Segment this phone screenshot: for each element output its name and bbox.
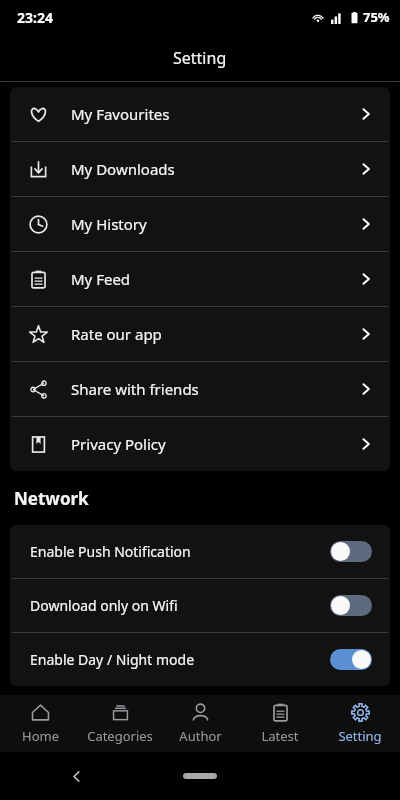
staticText: Latest bbox=[261, 727, 299, 745]
button[interactable]: Download only on Wifi bbox=[10, 579, 390, 632]
staticText: My History bbox=[71, 214, 358, 234]
button[interactable]: Privacy Policy bbox=[10, 417, 390, 471]
staticText: Privacy Policy bbox=[71, 434, 358, 454]
button[interactable]: Setting bbox=[320, 695, 400, 752]
staticText: My Feed bbox=[71, 269, 358, 289]
button[interactable]: Rate our app bbox=[10, 307, 390, 361]
staticText: My Downloads bbox=[71, 159, 358, 179]
other: Enable Day / Night mode bbox=[330, 649, 372, 670]
button[interactable]: Home bbox=[0, 695, 80, 752]
other: Home bbox=[183, 773, 217, 779]
staticText: Network bbox=[14, 487, 89, 510]
button[interactable]: Categories bbox=[80, 695, 160, 752]
button[interactable]: My Feed bbox=[10, 252, 390, 306]
other: Enable Push Notification bbox=[330, 541, 372, 562]
staticText: Categories bbox=[87, 727, 153, 745]
other: Download only on Wifi bbox=[330, 595, 372, 616]
staticText: Setting bbox=[173, 47, 227, 69]
button[interactable]: My Downloads bbox=[10, 142, 390, 196]
staticText: 23:24 bbox=[17, 8, 53, 27]
staticText: 75% bbox=[363, 8, 390, 26]
staticText: Author bbox=[179, 727, 222, 745]
button[interactable]: Enable Push Notification bbox=[10, 525, 390, 578]
button[interactable]: My Favourites bbox=[10, 87, 390, 141]
button[interactable]: Share with friends bbox=[10, 362, 390, 416]
staticText: Enable Day / Night mode bbox=[30, 650, 330, 669]
other: Back bbox=[70, 770, 83, 783]
staticText: My Favourites bbox=[71, 104, 358, 124]
button[interactable]: Author bbox=[160, 695, 240, 752]
staticText: Rate our app bbox=[71, 324, 358, 344]
button[interactable]: Enable Day / Night mode bbox=[10, 633, 390, 686]
staticText: Setting bbox=[338, 727, 382, 745]
button[interactable]: My History bbox=[10, 197, 390, 251]
staticText: Enable Push Notification bbox=[30, 542, 330, 561]
staticText: Share with friends bbox=[71, 379, 358, 399]
button[interactable]: Latest bbox=[240, 695, 320, 752]
staticText: Home bbox=[22, 727, 59, 745]
staticText: Download only on Wifi bbox=[30, 596, 330, 615]
